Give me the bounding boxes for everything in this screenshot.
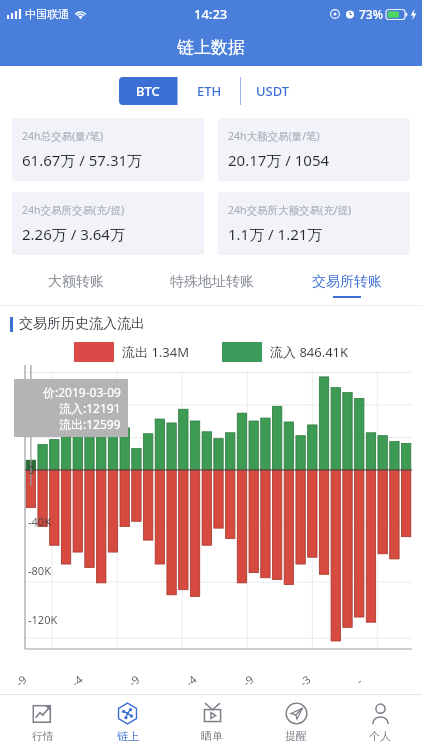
staticText: 流出 1.34M: [122, 343, 189, 361]
staticText: 大额转账: [48, 273, 104, 291]
staticText: 14:23: [194, 5, 228, 23]
staticText: 0: [28, 462, 35, 477]
staticText: 中国联通: [25, 7, 69, 21]
staticText: 24h总交易(量/笔): [22, 129, 104, 143]
staticText: -120K: [28, 612, 58, 627]
button[interactable]: 24h交易所大额交易(充/提): [218, 192, 410, 255]
staticText: 24h交易所大额交易(充/提): [228, 203, 352, 217]
staticText: 流出:12599: [59, 416, 121, 432]
button[interactable]: 行情: [0, 695, 85, 750]
button[interactable]: 24h大额交易(量/笔): [218, 118, 410, 181]
staticText: 链上数据: [177, 37, 245, 58]
staticText: 1.1万 / 1.21万: [228, 224, 323, 244]
button[interactable]: ETH: [178, 77, 240, 105]
button[interactable]: 晒单: [170, 695, 254, 750]
staticText: 流入:12191: [59, 400, 121, 416]
staticText: BTC: [136, 82, 160, 100]
staticText: -3: [296, 671, 314, 689]
staticText: -80K: [28, 563, 51, 578]
staticText: USDT: [256, 82, 290, 100]
staticText: -: [353, 673, 365, 688]
staticText: ETH: [197, 82, 222, 100]
button[interactable]: BTC: [119, 77, 177, 105]
staticText: -9: [239, 671, 257, 689]
staticText: 链上: [117, 729, 139, 743]
button[interactable]: 24h交易所交易(充/提): [12, 192, 204, 255]
staticText: 20.17万 / 1054: [228, 150, 330, 170]
button[interactable]: 特殊地址转账: [144, 265, 279, 305]
button[interactable]: 交易所转账: [279, 265, 414, 305]
staticText: 24h大额交易(量/笔): [228, 129, 320, 143]
staticText: 交易所转账: [312, 273, 382, 291]
button[interactable]: 大额转账: [8, 265, 144, 305]
staticText: 个人: [369, 729, 391, 743]
staticText: -9: [12, 671, 30, 689]
button[interactable]: 24h总交易(量/笔): [12, 118, 204, 181]
button[interactable]: USDT: [241, 77, 304, 105]
staticText: 流入 846.41K: [270, 343, 349, 361]
staticText: -9: [125, 671, 143, 689]
staticText: 提醒: [285, 729, 307, 743]
staticText: 特殊地址转账: [170, 273, 254, 291]
staticText: -4: [68, 671, 86, 689]
staticText: 晒单: [201, 729, 223, 743]
staticText: 交易所历史流入流出: [19, 315, 145, 333]
staticText: 2.26万 / 3.64万: [22, 224, 125, 244]
staticText: 61.67万 / 57.31万: [22, 150, 143, 170]
button[interactable]: 链上: [85, 695, 170, 750]
staticText: 73%: [359, 6, 383, 22]
staticText: 24h交易所交易(充/提): [22, 203, 125, 217]
button[interactable]: 个人: [338, 695, 422, 750]
staticText: 行情: [32, 729, 54, 743]
staticText: -40K: [28, 514, 51, 529]
button[interactable]: 提醒: [254, 695, 338, 750]
staticText: 价:2019-03-09: [43, 384, 121, 400]
staticText: -4: [182, 671, 200, 689]
